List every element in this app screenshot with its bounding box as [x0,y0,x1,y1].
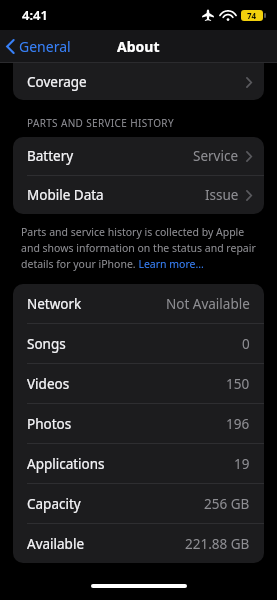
staticText: Songs [27,335,66,353]
staticText: 4:41 [22,6,48,24]
button[interactable]: Photos [13,404,264,443]
button[interactable]: Network [13,284,264,323]
staticText: Issue [205,186,239,204]
staticText: Not Available [166,295,250,313]
staticText: Photos [27,415,72,433]
button[interactable]: Mobile Data [13,176,264,214]
staticText: Applications [27,455,105,473]
staticText: PARTS AND SERVICE HISTORY [27,116,174,130]
button[interactable]: Applications [13,444,264,483]
staticText: Network [27,295,82,313]
other: Open Battery [246,151,252,162]
staticText: Available [27,535,84,553]
other: Open Coverage [246,77,252,88]
staticText: Capacity [27,495,81,513]
button[interactable]: General [0,32,79,61]
staticText: Battery [27,147,74,165]
staticText: 19 [234,455,250,473]
staticText: About [117,37,160,56]
staticText: Videos [27,375,70,393]
staticText: 256 GB [204,495,250,513]
staticText: Mobile Data [27,186,104,204]
other: Open Mobile Data [246,190,252,201]
staticText: 221.88 GB [185,535,250,553]
staticText: 74 [247,10,257,21]
button[interactable]: Songs [13,324,264,363]
staticText: 150 [226,375,250,393]
button[interactable]: Available [13,524,264,563]
button[interactable]: Coverage [13,63,264,100]
staticText: 196 [226,415,250,433]
staticText: 0 [242,335,250,353]
staticText: General [19,37,71,56]
button[interactable]: Battery [13,137,264,175]
staticText: Parts and service history is collected b… [21,225,261,271]
staticText: Coverage [27,73,87,91]
button[interactable]: Capacity [13,484,264,523]
staticText: Service [193,147,239,165]
button[interactable]: Videos [13,364,264,403]
